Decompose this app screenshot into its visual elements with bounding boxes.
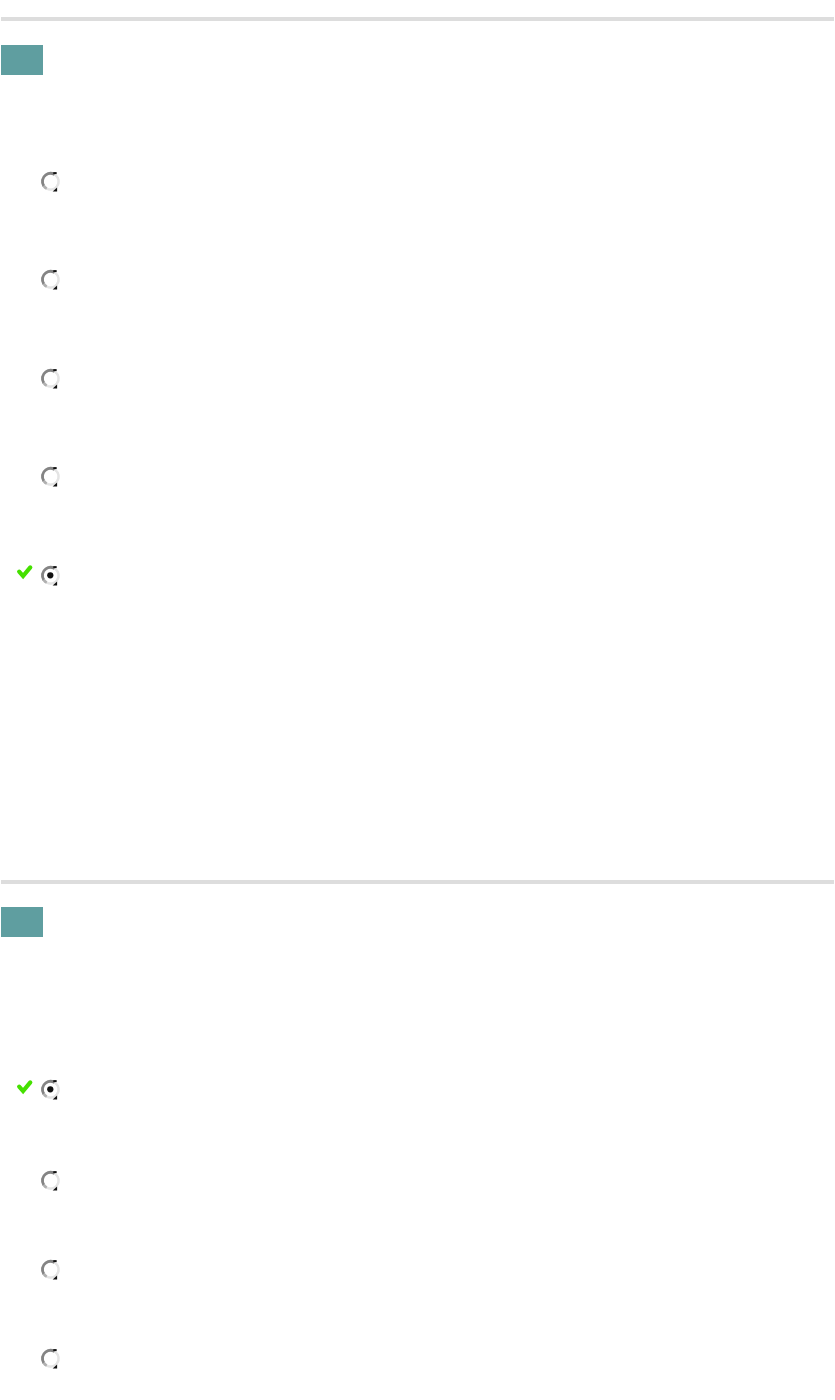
button[interactable]: Answer option [41, 368, 60, 389]
button[interactable]: Answer option [41, 1348, 60, 1369]
button[interactable]: Answer option [41, 1259, 60, 1280]
button[interactable]: Correct answer [17, 565, 32, 579]
button[interactable]: Answer option [41, 466, 60, 487]
button[interactable]: Answer option [41, 171, 60, 192]
button[interactable]: Correct answer [17, 1080, 32, 1094]
button[interactable]: Answer option [41, 269, 60, 290]
button[interactable]: Answer option [41, 1170, 60, 1191]
button[interactable]: Selected answer [41, 1079, 60, 1100]
button[interactable]: Selected answer [41, 565, 60, 586]
